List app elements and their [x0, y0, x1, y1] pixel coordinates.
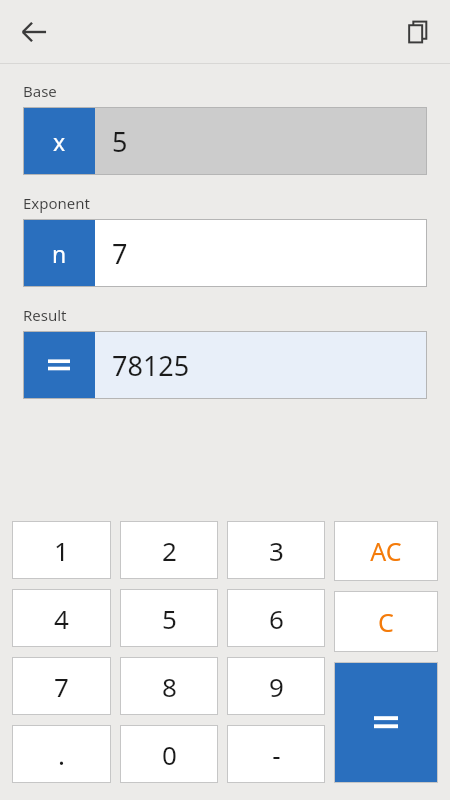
button[interactable]: 9: [227, 657, 325, 715]
staticText: C: [378, 605, 394, 639]
button[interactable]: Equals: [334, 662, 438, 783]
button[interactable]: 0: [120, 725, 218, 783]
staticText: 9: [269, 669, 284, 704]
staticText: 78125: [112, 347, 190, 384]
button[interactable]: -: [227, 725, 325, 783]
staticText: Result: [23, 305, 67, 325]
staticText: 7: [112, 235, 128, 272]
staticText: 8: [162, 669, 177, 704]
button[interactable]: .: [12, 725, 111, 783]
button[interactable]: x: [23, 107, 427, 175]
button[interactable]: 6: [227, 589, 325, 647]
button[interactable]: 3: [227, 521, 325, 579]
staticText: 1: [54, 533, 69, 568]
button[interactable]: C: [334, 591, 438, 652]
staticText: -: [272, 737, 281, 772]
button[interactable]: 2: [120, 521, 218, 579]
button[interactable]: Back: [10, 8, 58, 56]
staticText: Exponent: [23, 193, 90, 213]
staticText: 7: [54, 669, 69, 704]
staticText: AC: [370, 534, 402, 568]
staticText: x: [53, 126, 66, 157]
staticText: 2: [162, 533, 177, 568]
staticText: Base: [23, 81, 57, 101]
button[interactable]: Copy: [394, 8, 442, 56]
button[interactable]: 1: [12, 521, 111, 579]
button[interactable]: n: [23, 219, 427, 287]
staticText: 3: [269, 533, 284, 568]
button[interactable]: 4: [12, 589, 111, 647]
button[interactable]: AC: [334, 521, 438, 581]
button[interactable]: 7: [12, 657, 111, 715]
staticText: 0: [162, 737, 177, 772]
staticText: 4: [54, 601, 69, 636]
staticText: 6: [269, 601, 284, 636]
button[interactable]: 78125: [23, 331, 427, 399]
staticText: .: [58, 737, 65, 772]
staticText: 5: [112, 123, 128, 160]
button[interactable]: 5: [120, 589, 218, 647]
button[interactable]: 8: [120, 657, 218, 715]
staticText: 5: [162, 601, 177, 636]
staticText: n: [52, 238, 67, 269]
